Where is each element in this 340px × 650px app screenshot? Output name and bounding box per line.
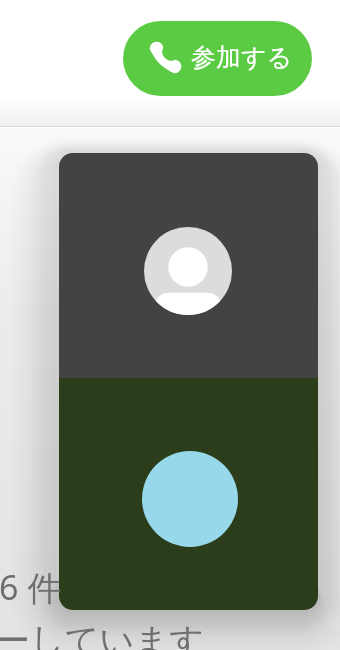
button[interactable] [59, 153, 318, 610]
staticText: 参加する [191, 42, 293, 73]
staticText: ーしています [0, 619, 204, 650]
staticText: 6 件 [0, 564, 62, 610]
button[interactable]: 参加する [123, 21, 312, 96]
